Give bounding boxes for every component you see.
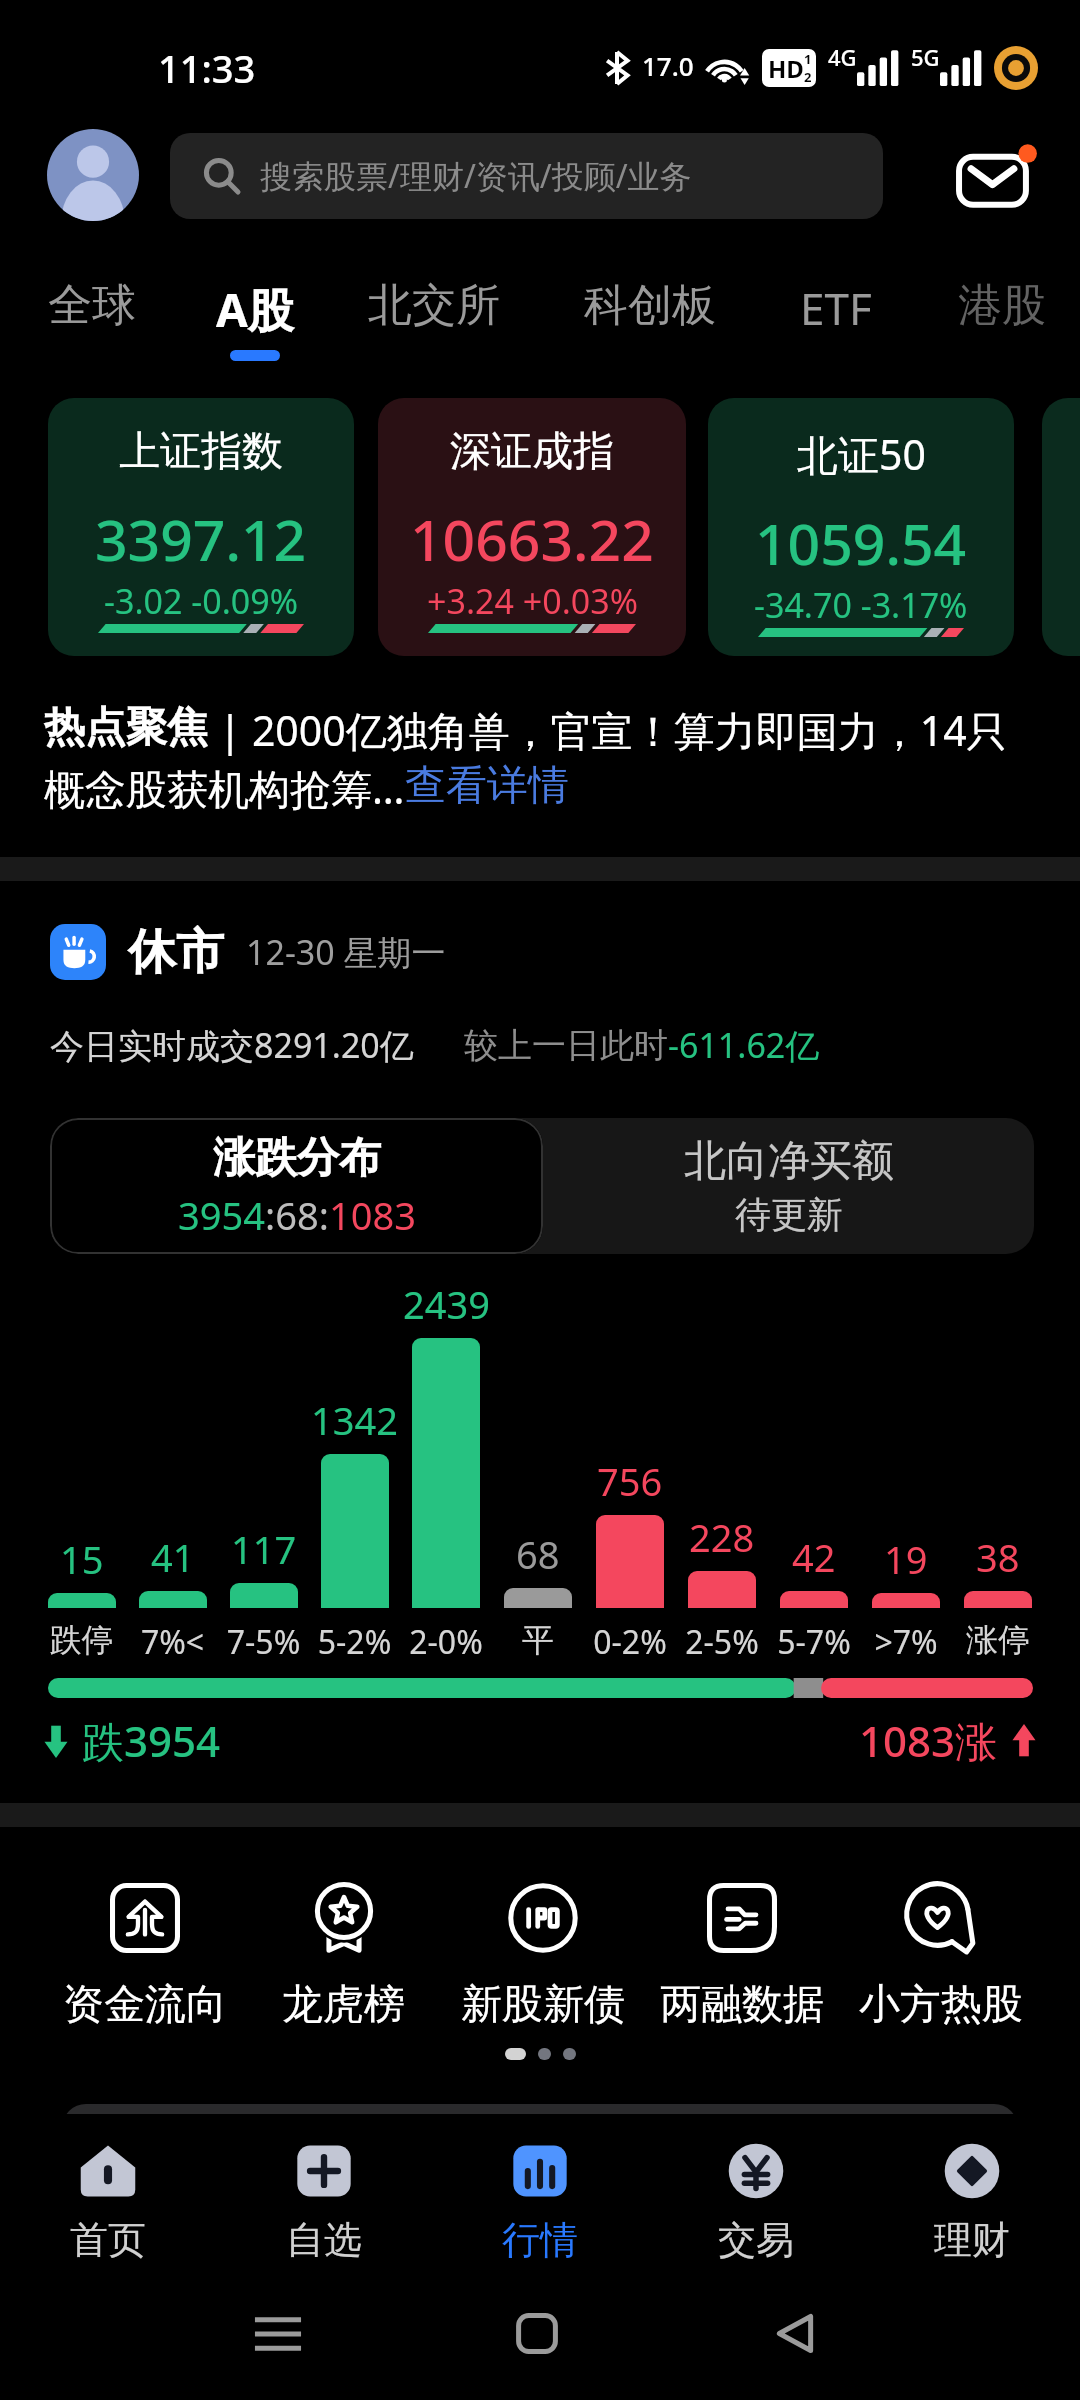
staticText: 0-2%	[584, 1620, 676, 1664]
staticText: 涨跌分布	[213, 1132, 381, 1185]
button[interactable]: 上证指数	[48, 398, 354, 656]
button[interactable]: Profile	[47, 129, 139, 221]
button[interactable]: 涨跌分布	[50, 1118, 543, 1254]
staticText: 42	[792, 1531, 836, 1583]
staticText: 12-30 星期一	[246, 929, 446, 975]
staticText: +3.24 +0.03%	[427, 578, 638, 624]
staticText: 待更新	[735, 1192, 843, 1237]
staticText: :68:	[265, 1189, 329, 1241]
button[interactable]: 交易	[648, 2114, 864, 2288]
staticText: 19	[884, 1533, 928, 1585]
staticText: 1	[804, 50, 812, 68]
staticText: 休市	[128, 922, 224, 982]
staticText: 小方热股	[859, 1979, 1023, 2031]
staticText: 平	[492, 1620, 584, 1660]
staticText: 7%<	[127, 1620, 218, 1664]
staticText: 5G	[911, 42, 940, 72]
button[interactable]: 自选	[216, 2114, 432, 2288]
staticText: -34.70 -3.17%	[754, 582, 968, 628]
staticText: 概念股获机构抢筹…	[44, 760, 405, 816]
staticText: -611.62亿	[668, 1022, 820, 1068]
staticText: HD	[768, 52, 804, 85]
button[interactable]: 深证成指	[378, 398, 686, 656]
button[interactable]: ETF	[800, 278, 872, 338]
staticText: 10663.22	[410, 500, 654, 578]
button[interactable]: 两融数据	[642, 1883, 841, 2031]
button[interactable]: Messages	[952, 136, 1040, 216]
button[interactable]: 龙虎榜	[244, 1883, 443, 2031]
staticText: 查看详情	[405, 760, 569, 812]
staticText: 港股	[958, 278, 1046, 333]
staticText: 较上一日此时	[464, 1024, 668, 1067]
staticText: 资金流向	[63, 1979, 227, 2031]
button[interactable]: 热点聚焦	[40, 696, 1040, 816]
staticText: 68	[516, 1528, 560, 1580]
staticText: 117	[231, 1523, 297, 1575]
staticText: 跌停	[36, 1620, 127, 1660]
staticText: 15	[60, 1533, 104, 1585]
staticText: 北向净买额	[684, 1135, 894, 1188]
button[interactable]: 首页	[0, 2114, 216, 2288]
button[interactable]: A股	[216, 278, 294, 361]
staticText: | 2000亿独角兽，官宣！算力即国力，14只	[208, 702, 1008, 758]
staticText: 今日实时成交8291.20亿	[50, 1022, 414, 1068]
staticText: 1342	[311, 1394, 398, 1446]
staticText: 全球	[48, 278, 136, 333]
button[interactable]: 科创板	[584, 278, 716, 333]
staticText: 1083	[329, 1189, 416, 1241]
staticText: 行情	[502, 2216, 578, 2264]
staticText: 38	[976, 1531, 1020, 1583]
staticText: 5-7%	[768, 1620, 860, 1664]
staticText: 深证成指	[450, 426, 614, 478]
staticText: >7%	[860, 1620, 952, 1664]
button[interactable]: 资金流向	[46, 1883, 244, 2031]
staticText: 3954	[178, 1189, 265, 1241]
staticText: 3397.12	[95, 500, 307, 578]
staticText: 11:33	[158, 42, 256, 94]
button[interactable]: 北交所	[368, 278, 500, 333]
button[interactable]: Home	[514, 2310, 560, 2356]
button[interactable]: 休市	[50, 922, 446, 982]
staticText: 4G	[828, 42, 857, 72]
staticText: ETF	[800, 278, 872, 338]
staticText: 交易	[718, 2216, 794, 2264]
button[interactable]: 小方热股	[841, 1883, 1040, 2031]
button[interactable]: Recents	[254, 2313, 302, 2355]
staticText: 7-5%	[218, 1620, 309, 1664]
staticText: 龙虎榜	[282, 1979, 405, 2031]
staticText: 两融数据	[660, 1979, 824, 2031]
staticText: 2-5%	[676, 1620, 768, 1664]
button[interactable]: 理财	[864, 2114, 1080, 2288]
staticText: 5-2%	[309, 1620, 400, 1664]
staticText: -3.02 -0.09%	[104, 578, 298, 624]
staticText: 2	[804, 68, 812, 86]
button[interactable]: 北向净买额	[543, 1118, 1034, 1254]
staticText: 首页	[70, 2216, 146, 2264]
staticText: 41	[151, 1531, 195, 1583]
staticText: 北交所	[368, 278, 500, 333]
staticText: 跌3954	[82, 1712, 221, 1769]
staticText: A股	[216, 278, 294, 341]
staticText: 涨停	[952, 1620, 1044, 1660]
staticText: 自选	[286, 2216, 362, 2264]
staticText: 1059.54	[755, 504, 967, 582]
staticText: 17.0	[642, 48, 694, 83]
button[interactable]: 行情	[432, 2114, 648, 2288]
staticText: 2439	[403, 1278, 490, 1330]
staticText: 1083涨	[859, 1712, 998, 1769]
staticText: 上证指数	[119, 426, 283, 478]
button[interactable]: 搜索股票/理财/资讯/投顾/业务	[170, 133, 883, 219]
button[interactable]: 创业板指	[1042, 398, 1080, 656]
staticText: 新股新债	[461, 1979, 625, 2031]
staticText: 228	[689, 1511, 755, 1563]
button[interactable]: Back	[772, 2310, 818, 2356]
staticText: 756	[597, 1455, 663, 1507]
staticText: 搜索股票/理财/资讯/投顾/业务	[260, 154, 692, 198]
button[interactable]: 北证50	[708, 398, 1014, 656]
button[interactable]: 港股	[958, 278, 1046, 333]
button[interactable]: 新股新债	[443, 1883, 642, 2031]
staticText: 2-0%	[400, 1620, 492, 1664]
button[interactable]: 全球	[48, 278, 136, 333]
staticText: 北证50	[797, 426, 926, 482]
staticText: 理财	[934, 2216, 1010, 2264]
